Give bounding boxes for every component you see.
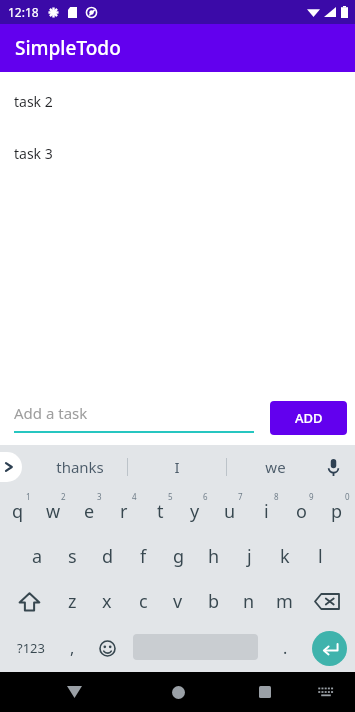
staticText: w	[46, 499, 61, 524]
button[interactable]: o	[285, 489, 317, 534]
button[interactable]: u	[214, 489, 246, 534]
staticText: ?123	[17, 639, 45, 657]
button[interactable]: task 3	[0, 140, 355, 166]
staticText: 1	[26, 491, 31, 502]
staticText: 2	[61, 491, 66, 502]
button[interactable]: Add a task	[14, 403, 254, 433]
staticText: a	[32, 544, 43, 569]
button[interactable]: I	[132, 445, 222, 489]
staticText: h	[208, 544, 220, 569]
staticText: thanks	[56, 457, 104, 477]
button[interactable]: k	[269, 534, 301, 579]
button[interactable]: v	[162, 579, 194, 624]
staticText: u	[224, 499, 236, 524]
button[interactable]: j	[233, 534, 265, 579]
button[interactable]: Recents	[247, 674, 283, 710]
staticText: 9	[309, 491, 314, 502]
button[interactable]: thanks	[35, 445, 125, 489]
button[interactable]: Voice input	[317, 451, 349, 483]
button[interactable]: .	[272, 624, 298, 672]
button[interactable]: Home	[160, 674, 196, 710]
button[interactable]: task 2	[0, 88, 355, 114]
button[interactable]: i	[250, 489, 282, 534]
button[interactable]: z	[56, 579, 88, 624]
staticText: z	[68, 589, 77, 614]
staticText: m	[276, 589, 293, 614]
staticText: y	[190, 499, 200, 524]
button[interactable]: e	[73, 489, 105, 534]
staticText: 0	[345, 491, 350, 502]
staticText: 4	[132, 491, 137, 502]
button[interactable]: ,	[58, 624, 86, 672]
staticText: q	[12, 499, 24, 524]
button[interactable]: x	[91, 579, 123, 624]
button[interactable]: Emoji	[92, 624, 122, 672]
staticText: 12:18	[8, 4, 39, 20]
button[interactable]: d	[92, 534, 124, 579]
button[interactable]: q	[2, 489, 34, 534]
staticText: we	[265, 457, 286, 477]
button[interactable]: h	[198, 534, 230, 579]
staticText: ,	[70, 637, 75, 659]
staticText: 7	[238, 491, 243, 502]
button[interactable]: n	[233, 579, 265, 624]
staticText: 3	[97, 491, 102, 502]
staticText: b	[208, 589, 220, 614]
staticText: i	[264, 499, 269, 524]
button[interactable]: Expand suggestions	[0, 452, 22, 482]
staticText: p	[331, 499, 343, 524]
button[interactable]: Back	[56, 674, 92, 710]
staticText: task 2	[14, 92, 53, 111]
button[interactable]: f	[127, 534, 159, 579]
button[interactable]: t	[144, 489, 176, 534]
staticText: task 3	[14, 144, 53, 163]
staticText: I	[174, 457, 180, 477]
staticText: SimpleTodo	[15, 35, 121, 61]
staticText: k	[280, 544, 290, 569]
button[interactable]: g	[163, 534, 195, 579]
button[interactable]: we	[230, 445, 320, 489]
button[interactable]: ?123	[8, 624, 54, 672]
staticText: ADD	[295, 409, 323, 427]
button[interactable]: s	[56, 534, 88, 579]
staticText: s	[68, 544, 77, 569]
staticText: t	[157, 499, 164, 524]
staticText: f	[140, 544, 147, 569]
staticText: j	[247, 544, 252, 569]
staticText: g	[173, 544, 185, 569]
staticText: Add a task	[14, 403, 88, 423]
button[interactable]: w	[37, 489, 69, 534]
button[interactable]: m	[268, 579, 300, 624]
staticText: r	[120, 499, 128, 524]
staticText: d	[102, 544, 114, 569]
button[interactable]: Shift	[10, 579, 48, 624]
staticText: c	[139, 589, 148, 614]
button[interactable]: Switch keyboard	[311, 677, 341, 707]
staticText: 8	[274, 491, 279, 502]
staticText: o	[296, 499, 307, 524]
staticText: l	[318, 544, 323, 569]
button[interactable]: ADD	[270, 401, 347, 435]
button[interactable]: Backspace	[307, 579, 347, 624]
staticText: .	[283, 637, 288, 659]
staticText: 6	[203, 491, 208, 502]
staticText: x	[102, 589, 112, 614]
button[interactable]: a	[21, 534, 53, 579]
button[interactable]: p	[321, 489, 353, 534]
button[interactable]: r	[108, 489, 140, 534]
button[interactable]: c	[127, 579, 159, 624]
button[interactable]: Enter	[312, 631, 347, 666]
staticText: n	[243, 589, 255, 614]
staticText: e	[84, 499, 95, 524]
button[interactable]: y	[179, 489, 211, 534]
staticText: v	[173, 589, 183, 614]
button[interactable]: l	[304, 534, 336, 579]
button[interactable]: b	[198, 579, 230, 624]
staticText: 5	[168, 491, 173, 502]
